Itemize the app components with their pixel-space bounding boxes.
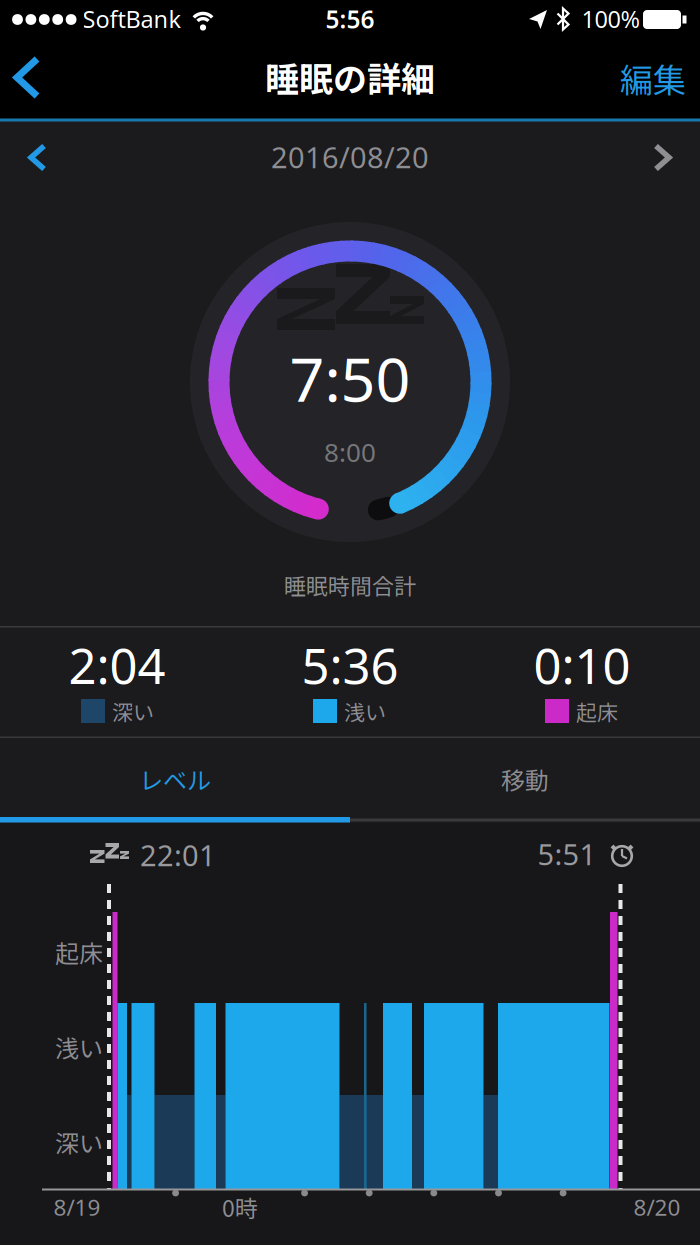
staticText: 100% [581, 3, 640, 35]
staticText: 22:01 [140, 836, 216, 874]
staticText: 5:56 [325, 3, 374, 35]
staticText: 8/20 [633, 1192, 680, 1222]
staticText: 起床 [576, 696, 618, 726]
staticText: レベル [139, 762, 211, 796]
staticText: 5:36 [301, 632, 398, 698]
staticText: 睡眠時間合計 [284, 569, 416, 601]
button[interactable]: 編集 [620, 55, 686, 101]
staticText: 深い [55, 1125, 103, 1159]
button[interactable]: Back [5, 53, 49, 102]
staticText: 睡眠の詳細 [265, 53, 435, 101]
staticText: 8/19 [53, 1192, 100, 1222]
button[interactable]: 移動 [350, 739, 700, 819]
staticText: 5:51 [537, 835, 596, 873]
staticText: 浅い [55, 1030, 103, 1064]
staticText: 起床 [55, 935, 103, 969]
staticText: 8:00 [324, 435, 376, 469]
staticText: 移動 [501, 762, 549, 796]
staticText: 編集 [620, 55, 686, 101]
staticText: 7:50 [289, 337, 410, 418]
staticText: 2016/08/20 [271, 138, 429, 176]
staticText: 深い [112, 696, 154, 726]
staticText: 0時 [222, 1191, 258, 1223]
staticText: SoftBank [82, 3, 181, 35]
staticText: 2:04 [68, 632, 165, 698]
button[interactable]: Previous day [19, 134, 55, 180]
staticText: 浅い [344, 696, 386, 726]
button[interactable]: Next day [644, 134, 680, 180]
button[interactable]: レベル [0, 739, 350, 819]
staticText: 0:10 [533, 632, 630, 698]
